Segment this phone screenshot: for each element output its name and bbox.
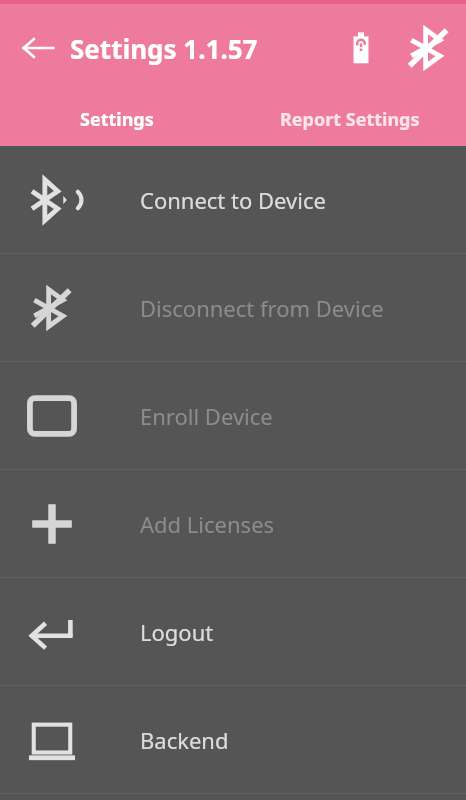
staticText: Settings xyxy=(80,107,154,132)
button[interactable]: Backend xyxy=(0,686,466,793)
button[interactable]: Report Settings xyxy=(233,92,466,146)
button[interactable]: Add Licenses xyxy=(0,470,466,577)
button[interactable]: Settings xyxy=(0,92,233,146)
button[interactable]: Enroll Device xyxy=(0,362,466,469)
button[interactable]: Battery unknown xyxy=(338,25,384,71)
staticText: Backend xyxy=(140,725,229,755)
button[interactable]: Back xyxy=(14,24,62,72)
staticText: Add Licenses xyxy=(140,509,275,539)
staticText: Disconnect from Device xyxy=(140,293,384,323)
button[interactable]: Bluetooth disabled xyxy=(406,25,452,71)
staticText: Connect to Device xyxy=(140,185,326,215)
button[interactable]: Logout xyxy=(0,578,466,685)
staticText: Logout xyxy=(140,617,214,647)
staticText: Settings 1.1.57 xyxy=(70,31,258,66)
staticText: Report Settings xyxy=(280,107,420,132)
button[interactable]: Disconnect from Device xyxy=(0,254,466,361)
button[interactable]: Connect to Device xyxy=(0,146,466,253)
staticText: Enroll Device xyxy=(140,401,273,431)
